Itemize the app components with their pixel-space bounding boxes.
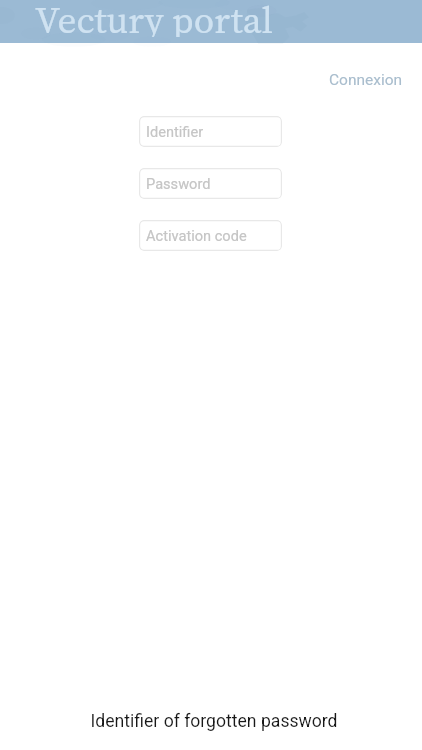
staticText: Vectury portal <box>35 0 273 37</box>
staticText: Connexion <box>329 71 403 89</box>
staticText: Activation code <box>146 227 247 244</box>
button[interactable]: Identifier <box>139 116 282 147</box>
button[interactable]: Connexion <box>317 63 415 97</box>
button[interactable]: Password <box>139 168 282 199</box>
staticText: Password <box>146 175 211 192</box>
staticText: Identifier of forgotten password <box>90 711 338 732</box>
button[interactable]: Identifier of forgotten password <box>74 701 354 742</box>
button[interactable]: Activation code <box>139 220 282 251</box>
staticText: Identifier <box>146 123 204 140</box>
